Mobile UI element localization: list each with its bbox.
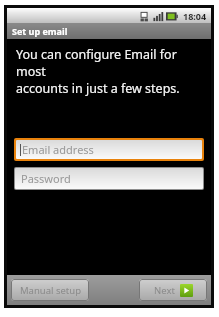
- button[interactable]: Next: [139, 279, 207, 301]
- button[interactable]: Email address: [16, 140, 202, 159]
- button[interactable]: Password: [15, 168, 203, 189]
- staticText: Next: [154, 284, 175, 297]
- staticText: 18:04: [183, 10, 207, 22]
- button[interactable]: Manual setup: [11, 279, 89, 301]
- staticText: Password: [21, 171, 71, 186]
- staticText: Email address: [22, 142, 94, 157]
- staticText: Manual setup: [20, 284, 81, 297]
- staticText: Set up email: [12, 25, 68, 37]
- staticText: You can configure Email for most account…: [16, 46, 202, 97]
- other: Next: [180, 284, 193, 297]
